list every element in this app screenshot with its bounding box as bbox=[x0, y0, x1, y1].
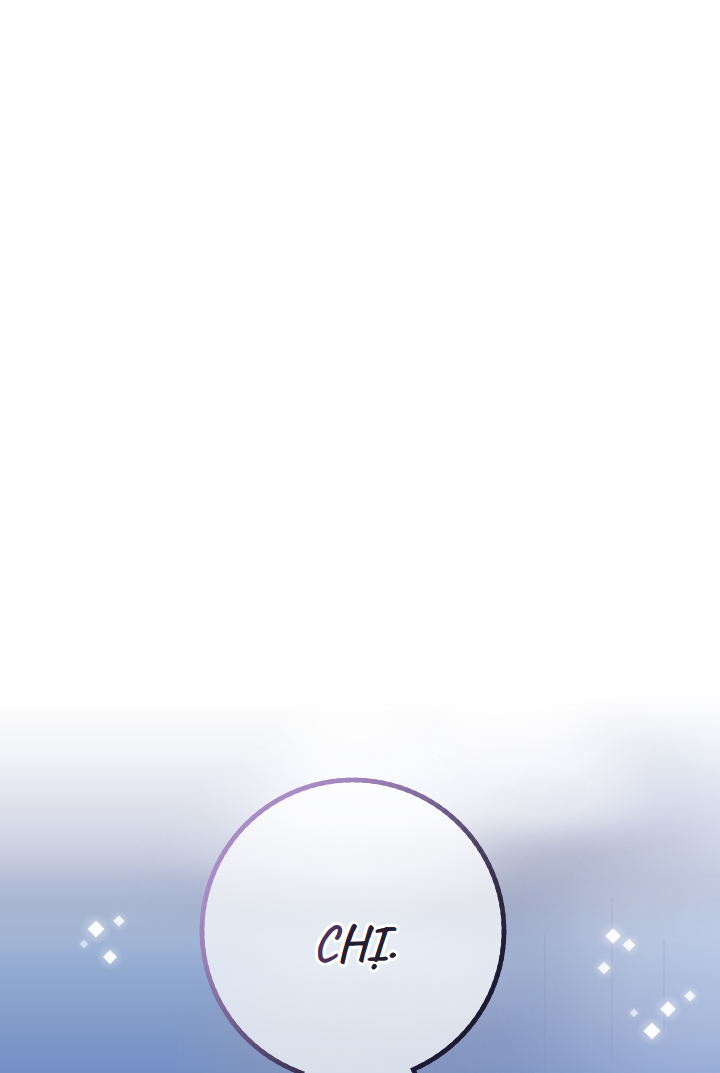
staticText: CHỊ. bbox=[316, 911, 399, 975]
staticText: CHỊ. bbox=[312, 911, 395, 975]
staticText: CHỊ. bbox=[311, 908, 394, 972]
staticText: CHỊ. bbox=[310, 913, 393, 977]
staticText: CHỊ. bbox=[309, 911, 392, 975]
staticText: CHỊ. bbox=[311, 909, 394, 972]
staticText: CHỊ. bbox=[315, 909, 398, 973]
staticText: CHỊ. bbox=[313, 914, 396, 978]
staticText: CHỊ. bbox=[315, 913, 398, 977]
staticText: CHỊ. bbox=[315, 912, 398, 976]
staticText: CHỊ. bbox=[310, 909, 393, 973]
staticText: CHỊ. bbox=[314, 909, 397, 972]
staticText: CHỊ. bbox=[310, 912, 393, 976]
staticText: CHỊ. bbox=[314, 914, 397, 977]
staticText: CHỊ. bbox=[313, 908, 396, 972]
staticText: CHỊ. bbox=[311, 914, 394, 977]
staticText: CHỊ. bbox=[315, 910, 398, 974]
staticText: CHỊ. bbox=[312, 914, 395, 978]
staticText: CHỊ. bbox=[312, 908, 395, 972]
staticText: HỊ. bbox=[336, 911, 395, 975]
staticText: CHỊ. bbox=[311, 914, 394, 978]
staticText: CHỊ. bbox=[310, 910, 393, 974]
